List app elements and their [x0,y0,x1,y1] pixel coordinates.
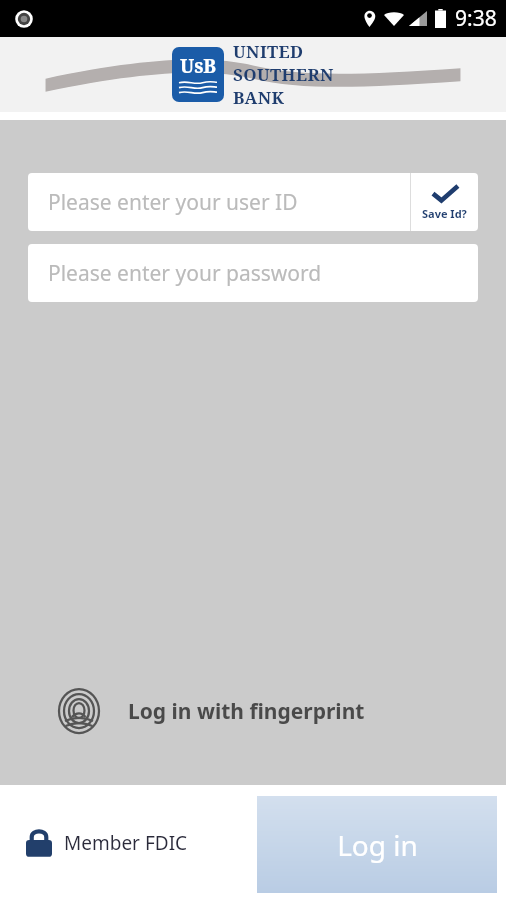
button[interactable]: Please enter your user ID [28,173,410,231]
staticText: Save Id? [422,206,467,221]
staticText: Log in [337,826,418,864]
staticText: SOUTHERN [233,63,334,86]
staticText: Please enter your password [48,259,322,288]
staticText: Member FDIC [64,830,188,856]
staticText: BANK [233,86,285,109]
staticText: Log in with fingerprint [128,697,365,726]
staticText: 9:38 [455,4,497,33]
button[interactable]: Log in [257,796,497,893]
button[interactable]: Please enter your password [28,244,478,302]
staticText: UNITED [233,40,304,63]
button[interactable]: Member FDIC [22,824,192,862]
staticText: Please enter your user ID [48,188,298,217]
button[interactable]: Save Id [411,173,478,231]
staticText: UsB [180,53,217,79]
button[interactable]: Log in with fingerprint [50,682,369,740]
